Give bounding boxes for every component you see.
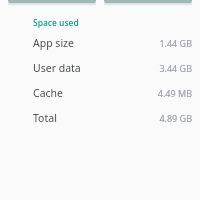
button[interactable]: User data	[33, 60, 192, 75]
staticText: Space used	[33, 17, 79, 29]
staticText: 4.49 MB	[157, 87, 192, 99]
button[interactable]: App size	[33, 35, 192, 50]
staticText: User data	[33, 61, 81, 75]
staticText: App size	[33, 36, 74, 50]
staticText: Cache	[33, 86, 63, 100]
button[interactable]: Total	[33, 110, 192, 125]
button[interactable]: Cache	[33, 85, 192, 100]
staticText: 4.89 GB	[159, 112, 192, 124]
staticText: 1.44 GB	[159, 37, 192, 49]
staticText: 3.44 GB	[159, 62, 192, 74]
button[interactable]: Force stop	[104, 0, 192, 3]
button[interactable]: Uninstall	[8, 0, 96, 3]
staticText: Total	[33, 111, 57, 125]
